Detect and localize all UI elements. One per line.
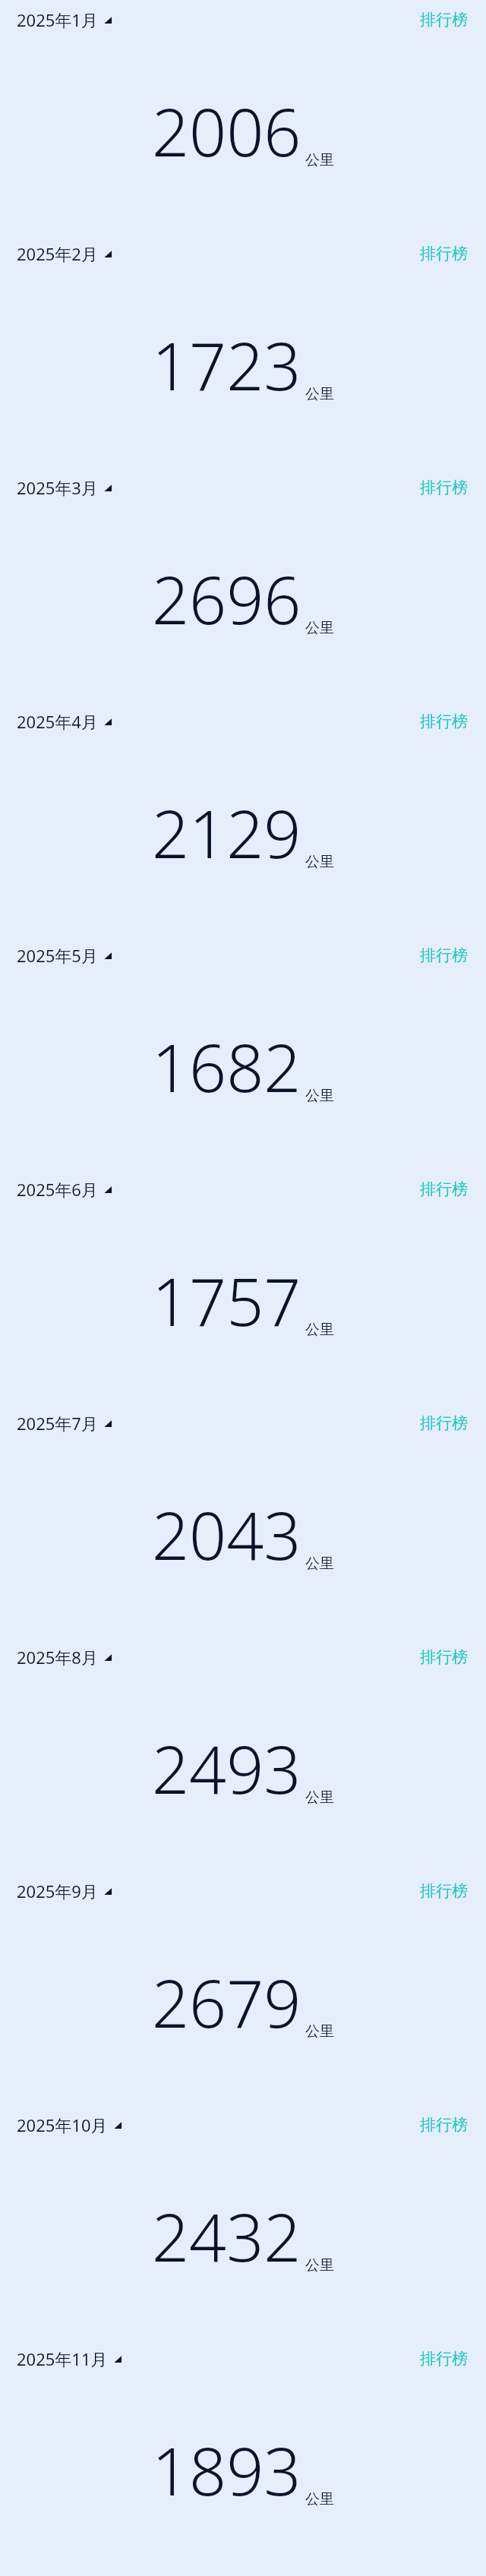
staticText: 2025年11月 bbox=[17, 2347, 108, 2370]
staticText: 2025年7月 bbox=[17, 1412, 98, 1435]
button[interactable]: 2025年7月 bbox=[17, 1409, 112, 1438]
staticText: 排行榜 bbox=[420, 1179, 468, 1199]
staticText: 2043 bbox=[152, 1490, 301, 1579]
other: 展开月份选择 bbox=[103, 1185, 112, 1194]
other: 展开月份选择 bbox=[103, 1886, 112, 1896]
button[interactable]: 2025年3月 bbox=[17, 473, 112, 502]
button[interactable]: 2025年1月 bbox=[17, 5, 112, 34]
staticText: 1682 bbox=[152, 1022, 301, 1111]
button[interactable]: 2025年6月 bbox=[17, 1175, 112, 1204]
staticText: 排行榜 bbox=[420, 244, 468, 264]
staticText: 2129 bbox=[152, 788, 301, 877]
staticText: 2025年3月 bbox=[17, 476, 98, 499]
staticText: 公里 bbox=[305, 151, 334, 169]
staticText: 1757 bbox=[152, 1256, 301, 1345]
staticText: 排行榜 bbox=[420, 1413, 468, 1433]
button[interactable]: 排行榜 bbox=[418, 7, 469, 33]
staticText: 公里 bbox=[305, 385, 334, 403]
staticText: 排行榜 bbox=[420, 10, 468, 30]
staticText: 2006 bbox=[152, 87, 301, 175]
staticText: 排行榜 bbox=[420, 2115, 468, 2135]
other: 展开月份选择 bbox=[103, 1419, 112, 1428]
staticText: 2025年1月 bbox=[17, 8, 98, 31]
other: 展开月份选择 bbox=[113, 2354, 122, 2363]
button[interactable]: 排行榜 bbox=[418, 1410, 469, 1436]
staticText: 2025年5月 bbox=[17, 944, 98, 967]
other: 展开月份选择 bbox=[103, 1653, 112, 1662]
button[interactable]: 2025年5月 bbox=[17, 941, 112, 970]
staticText: 2025年9月 bbox=[17, 1880, 98, 1902]
staticText: 公里 bbox=[305, 853, 334, 871]
staticText: 排行榜 bbox=[420, 1881, 468, 1901]
staticText: 2025年4月 bbox=[17, 710, 98, 733]
staticText: 1893 bbox=[152, 2426, 301, 2514]
button[interactable]: 2025年9月 bbox=[17, 1877, 112, 1905]
other: 展开月份选择 bbox=[103, 249, 112, 258]
other: 展开月份选择 bbox=[103, 951, 112, 960]
staticText: 公里 bbox=[305, 1087, 334, 1105]
button[interactable]: 2025年8月 bbox=[17, 1643, 112, 1672]
staticText: 2025年10月 bbox=[17, 2114, 108, 2136]
staticText: 公里 bbox=[305, 1788, 334, 1807]
staticText: 公里 bbox=[305, 2256, 334, 2275]
button[interactable]: 排行榜 bbox=[418, 475, 469, 500]
staticText: 排行榜 bbox=[420, 1647, 468, 1667]
button[interactable]: 排行榜 bbox=[418, 1878, 469, 1904]
other: 展开月份选择 bbox=[103, 15, 112, 24]
other: 展开月份选择 bbox=[103, 483, 112, 492]
button[interactable]: 2025年4月 bbox=[17, 707, 112, 736]
other: 展开月份选择 bbox=[103, 717, 112, 726]
staticText: 公里 bbox=[305, 1321, 334, 1339]
button[interactable]: 2025年2月 bbox=[17, 239, 112, 268]
staticText: 2025年8月 bbox=[17, 1646, 98, 1668]
button[interactable]: 排行榜 bbox=[418, 2346, 469, 2372]
button[interactable]: 排行榜 bbox=[418, 942, 469, 968]
staticText: 排行榜 bbox=[420, 478, 468, 497]
button[interactable]: 2025年11月 bbox=[17, 2344, 122, 2373]
staticText: 1723 bbox=[152, 320, 301, 409]
staticText: 2493 bbox=[152, 1724, 301, 1813]
staticText: 2025年6月 bbox=[17, 1178, 98, 1201]
staticText: 2025年2月 bbox=[17, 242, 98, 265]
staticText: 公里 bbox=[305, 2490, 334, 2508]
button[interactable]: 2025年10月 bbox=[17, 2110, 122, 2139]
staticText: 排行榜 bbox=[420, 712, 468, 731]
staticText: 2696 bbox=[152, 554, 301, 643]
staticText: 公里 bbox=[305, 2022, 334, 2041]
button[interactable]: 排行榜 bbox=[418, 241, 469, 267]
other: 展开月份选择 bbox=[113, 2120, 122, 2129]
staticText: 公里 bbox=[305, 619, 334, 637]
staticText: 2679 bbox=[152, 1958, 301, 2047]
staticText: 公里 bbox=[305, 1555, 334, 1573]
staticText: 排行榜 bbox=[420, 945, 468, 965]
button[interactable]: 排行榜 bbox=[418, 709, 469, 734]
button[interactable]: 排行榜 bbox=[418, 1176, 469, 1202]
button[interactable]: 排行榜 bbox=[418, 1644, 469, 1670]
staticText: 2432 bbox=[152, 2192, 301, 2281]
button[interactable]: 排行榜 bbox=[418, 2112, 469, 2138]
staticText: 排行榜 bbox=[420, 2349, 468, 2369]
